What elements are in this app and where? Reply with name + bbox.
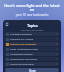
button[interactable]: Performance and tooling: [5, 57, 59, 61]
button[interactable]: Kotlin Multiplatform news: [5, 47, 59, 51]
button[interactable]: UI Design Essentials: [5, 32, 59, 36]
staticText: Here's some light and the latest on: [3, 3, 61, 12]
staticText: Motion and animation: [10, 63, 55, 66]
button[interactable]: Compose for Android: [5, 37, 59, 41]
staticText: Done: [29, 69, 36, 72]
staticText: pick what you follow: [21, 29, 43, 31]
staticText: Compose for Android: [10, 38, 55, 41]
button[interactable]: Accessibility patterns: [5, 52, 59, 56]
staticText: your 10 new bookmarks: [3, 13, 61, 17]
button[interactable]: Material You guidelines: [5, 42, 59, 46]
staticText: Accessibility patterns: [10, 53, 55, 56]
button[interactable]: Profile: [5, 22, 9, 26]
button[interactable]: Done: [5, 68, 59, 72]
staticText: Topics: [27, 23, 38, 28]
staticText: UI Design Essentials: [10, 33, 55, 36]
staticText: Kotlin Multiplatform news: [10, 48, 55, 51]
button[interactable]: Motion and animation: [5, 62, 59, 66]
staticText: Performance and tooling: [10, 58, 55, 61]
staticText: Material You guidelines: [10, 43, 55, 46]
button[interactable]: More options: [56, 22, 59, 25]
